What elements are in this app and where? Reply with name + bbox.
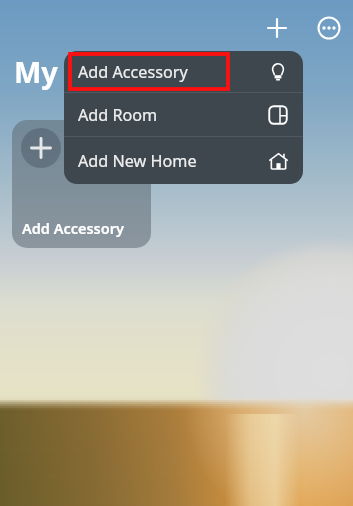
button[interactable]: Add Accessory — [64, 51, 303, 92]
staticText: Add New Home — [78, 150, 197, 172]
staticText: Add Room — [78, 104, 158, 126]
button[interactable]: Add — [262, 13, 292, 43]
button[interactable]: Add Room — [64, 93, 303, 136]
staticText: My — [14, 52, 58, 91]
button[interactable]: More options — [314, 13, 344, 43]
button[interactable]: Add Accessory — [12, 120, 151, 248]
staticText: Add Accessory — [22, 218, 124, 238]
staticText: Add Accessory — [78, 61, 188, 83]
button[interactable]: Add New Home — [64, 137, 303, 184]
